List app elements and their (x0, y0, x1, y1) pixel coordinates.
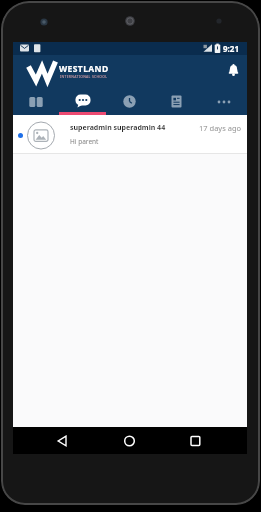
button[interactable]: superadmin superadmin 44 (13, 115, 247, 153)
staticText: 17 days ago (199, 123, 242, 133)
button[interactable] (225, 61, 241, 79)
button[interactable] (123, 434, 136, 448)
staticText: INTERNATIONAL SCHOOL (60, 74, 108, 79)
button[interactable] (106, 88, 153, 115)
button[interactable] (200, 88, 247, 115)
button[interactable] (153, 88, 200, 115)
staticText: 9:21 (223, 43, 239, 54)
staticText: WESTLAND (59, 63, 109, 75)
button[interactable] (13, 88, 59, 115)
button[interactable] (189, 434, 202, 448)
button[interactable] (57, 434, 70, 448)
staticText: superadmin superadmin 44 (70, 123, 166, 133)
button[interactable] (59, 88, 106, 115)
staticText: Hi parent (70, 137, 99, 146)
